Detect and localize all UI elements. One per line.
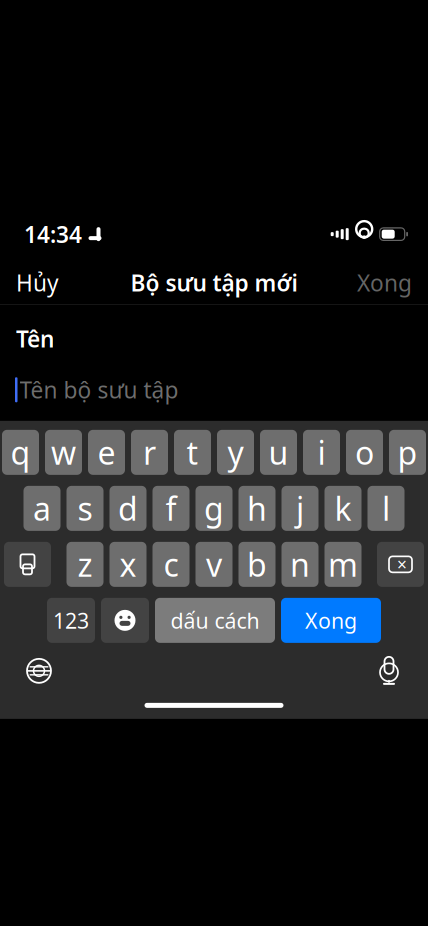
button[interactable]: Emoji [101, 598, 149, 643]
staticText: x [119, 543, 136, 586]
staticText: 123 [53, 606, 89, 634]
staticText: v [206, 543, 222, 586]
button[interactable]: dấu cách [155, 598, 275, 643]
staticText: a [33, 487, 51, 530]
button[interactable]: j [281, 486, 318, 531]
staticText: × [397, 553, 407, 576]
button[interactable]: o [346, 430, 383, 475]
button[interactable]: g [195, 486, 232, 531]
button[interactable]: z [66, 542, 103, 587]
button[interactable]: r [131, 430, 168, 475]
button[interactable]: l [367, 486, 404, 531]
staticText: Xong [305, 606, 357, 634]
staticText: Bộ sưu tập mới [130, 268, 297, 298]
button[interactable]: 123 [47, 598, 95, 643]
staticText: b [247, 543, 267, 586]
staticText: z [77, 543, 92, 586]
staticText: w [51, 431, 76, 474]
staticText: t [186, 431, 198, 474]
button[interactable]: x [109, 542, 146, 587]
button[interactable]: e [88, 430, 125, 475]
button[interactable]: Tên bộ sưu tập [0, 354, 428, 413]
staticText: m [328, 543, 358, 586]
staticText: c [163, 543, 178, 586]
button[interactable]: Dictate [366, 650, 412, 692]
staticText: k [334, 487, 351, 530]
button[interactable]: Xong [341, 259, 428, 307]
staticText: n [290, 543, 310, 586]
staticText: dấu cách [170, 606, 259, 634]
button[interactable]: u [260, 430, 297, 475]
button[interactable]: p [389, 430, 426, 475]
staticText: p [397, 431, 417, 474]
button[interactable]: d [109, 486, 146, 531]
staticText: j [296, 487, 304, 530]
button[interactable]: Shift [4, 542, 51, 587]
button[interactable]: t [174, 430, 211, 475]
button[interactable]: m [324, 542, 361, 587]
staticText: h [247, 487, 267, 530]
button[interactable]: Change keyboard language [16, 650, 62, 692]
button[interactable]: i [303, 430, 340, 475]
button[interactable]: h [238, 486, 275, 531]
button[interactable]: n [281, 542, 318, 587]
staticText: o [355, 431, 374, 474]
staticText: 14:34 [24, 219, 82, 249]
staticText: Xong [357, 268, 412, 298]
button[interactable]: q [2, 430, 39, 475]
button[interactable]: f [152, 486, 189, 531]
button[interactable]: k [324, 486, 361, 531]
button[interactable]: y [217, 430, 254, 475]
button[interactable]: b [238, 542, 275, 587]
staticText: y [227, 431, 243, 474]
staticText: e [97, 431, 115, 474]
staticText: i [317, 431, 325, 474]
staticText: Hủy [16, 268, 59, 298]
button[interactable]: Xong [281, 598, 381, 643]
staticText: l [382, 487, 390, 530]
button[interactable]: w [45, 430, 82, 475]
staticText: Tên bộ sưu tập [19, 375, 178, 405]
staticText: d [118, 487, 138, 530]
button[interactable]: Delete [377, 542, 424, 587]
staticText: Tên [16, 324, 54, 354]
staticText: g [204, 487, 224, 530]
staticText: s [77, 487, 92, 530]
button[interactable]: c [152, 542, 189, 587]
button[interactable]: Hủy [0, 259, 75, 307]
button[interactable]: s [66, 486, 103, 531]
staticText: f [165, 487, 176, 530]
staticText: q [10, 431, 30, 474]
button[interactable]: a [23, 486, 60, 531]
staticText: r [143, 431, 156, 474]
staticText: u [268, 431, 288, 474]
button[interactable]: v [195, 542, 232, 587]
